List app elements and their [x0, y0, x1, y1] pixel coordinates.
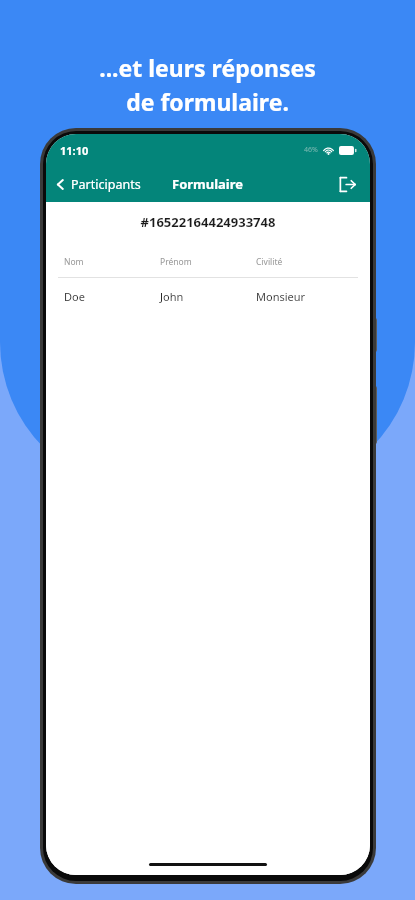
button[interactable]: Déconnexion [325, 166, 370, 202]
staticText: Formulaire [172, 175, 244, 193]
staticText: Participants [71, 176, 141, 193]
staticText: Civilité [256, 256, 352, 268]
button[interactable]: Participants [46, 166, 151, 202]
staticText: 11:10 [60, 143, 89, 158]
staticText: Prénom [160, 256, 256, 268]
staticText: 46% [304, 145, 318, 155]
staticText: Doe [64, 289, 160, 304]
staticText: Nom [64, 256, 160, 268]
staticText: ...et leurs réponses [99, 52, 316, 83]
staticText: de formulaire. [126, 86, 289, 117]
staticText: #16522164424933748 [46, 213, 370, 231]
staticText: Monsieur [256, 289, 352, 304]
staticText: John [160, 289, 256, 304]
button[interactable]: Doe [46, 287, 370, 306]
